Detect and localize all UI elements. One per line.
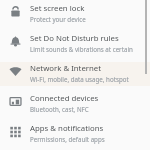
staticText: Apps & notifications	[30, 123, 104, 134]
staticText: Set Do Not Disturb rules	[30, 33, 119, 44]
staticText: Connected devices	[30, 93, 99, 104]
staticText: Protect your device	[30, 15, 86, 23]
button[interactable]: Apps & notifications	[0, 122, 150, 150]
button[interactable]: Set Do Not Disturb rules	[0, 32, 150, 62]
button[interactable]: Connected devices	[0, 92, 150, 122]
button[interactable]: Set screen lock	[0, 0, 150, 32]
staticText: Network & Internet	[30, 63, 102, 74]
staticText: Permissions, default apps	[30, 135, 105, 143]
staticText: Limit sounds & vibrations at certain tim…	[30, 45, 146, 53]
staticText: Bluetooth, cast, NFC	[30, 105, 89, 113]
button[interactable]: Network & Internet	[0, 62, 150, 92]
staticText: Wi-Fi, mobile, data usage, hotspot	[30, 75, 129, 83]
staticText: Set screen lock	[30, 3, 85, 14]
